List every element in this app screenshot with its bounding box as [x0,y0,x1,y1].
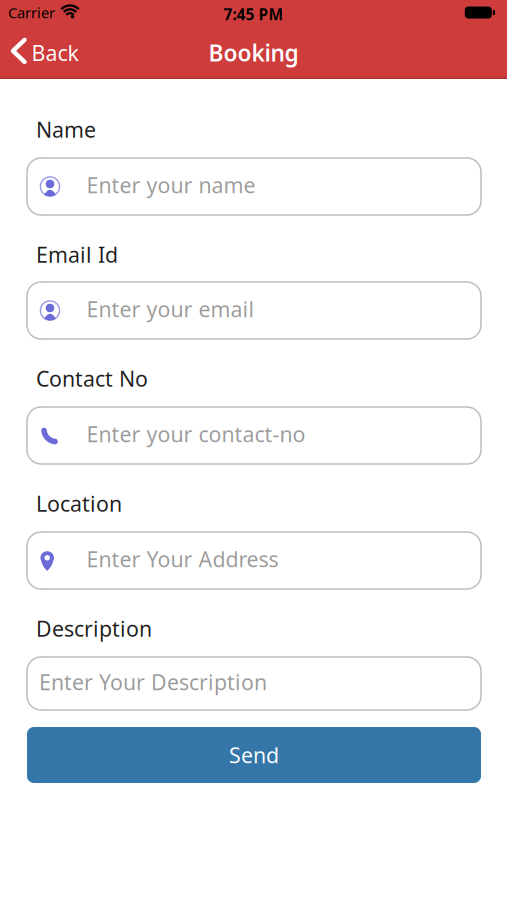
button[interactable]: Enter Your Address [27,532,481,589]
staticText: Enter Your Address [86,545,278,573]
button[interactable]: Back [0,38,78,66]
staticText: Enter your email [86,295,254,323]
staticText: 7:45 PM [223,4,283,25]
button[interactable]: Enter your name [27,158,481,215]
staticText: Booking [208,38,298,68]
staticText: Description [36,614,152,643]
staticText: Carrier [8,3,55,22]
button[interactable]: Enter your contact-no [27,407,481,464]
staticText: Enter your contact-no [86,420,305,448]
staticText: Back [31,38,78,67]
button[interactable]: Send [27,727,481,783]
staticText: Send [229,741,279,769]
staticText: Contact No [36,364,148,393]
staticText: Name [36,115,96,144]
staticText: Enter your name [86,171,255,199]
staticText: Enter Your Description [39,668,267,696]
button[interactable]: Enter Your Description [27,657,481,710]
button[interactable]: Enter your email [27,282,481,339]
staticText: Email Id [36,240,118,269]
staticText: Location [36,489,122,518]
